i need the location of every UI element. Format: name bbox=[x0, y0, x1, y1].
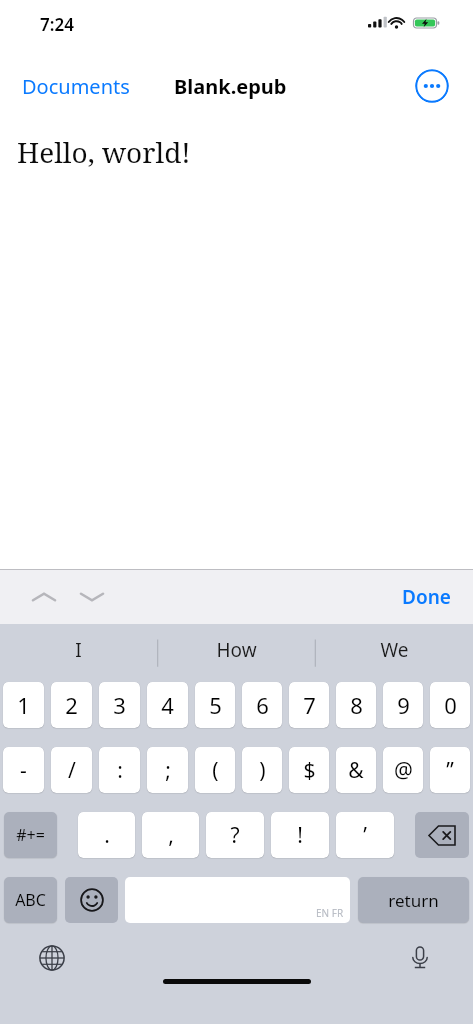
button[interactable]: @ bbox=[383, 747, 423, 793]
button[interactable]: ” bbox=[430, 747, 470, 793]
staticText: 2 bbox=[65, 690, 78, 720]
button[interactable]: How bbox=[157, 624, 315, 676]
button[interactable]: We bbox=[315, 624, 473, 676]
staticText: ” bbox=[446, 756, 454, 785]
button[interactable]: 7 bbox=[289, 682, 329, 728]
staticText: , bbox=[168, 821, 174, 850]
staticText: EN FR bbox=[316, 906, 344, 920]
button[interactable]: : bbox=[99, 747, 140, 793]
staticText: . bbox=[104, 821, 110, 850]
staticText: 9 bbox=[397, 690, 410, 720]
staticText: : bbox=[117, 756, 123, 785]
button[interactable]: 3 bbox=[99, 682, 140, 728]
button[interactable]: Space bbox=[125, 877, 350, 923]
button[interactable]: return bbox=[358, 877, 469, 923]
button[interactable]: Change keyboard language bbox=[33, 939, 71, 977]
button[interactable]: 1 bbox=[3, 682, 44, 728]
staticText: ( bbox=[212, 756, 219, 785]
button[interactable]: / bbox=[51, 747, 92, 793]
staticText: 5 bbox=[209, 690, 222, 720]
staticText: 6 bbox=[256, 690, 269, 720]
button[interactable]: - bbox=[3, 747, 44, 793]
button[interactable]: Backspace bbox=[415, 812, 469, 858]
staticText: 0 bbox=[444, 690, 457, 720]
staticText: Documents bbox=[22, 73, 130, 100]
button[interactable]: I bbox=[0, 624, 157, 676]
staticText: How bbox=[216, 637, 257, 663]
staticText: ; bbox=[165, 756, 171, 785]
button[interactable]: & bbox=[336, 747, 376, 793]
staticText: return bbox=[388, 889, 439, 912]
staticText: I bbox=[75, 637, 82, 663]
staticText: / bbox=[68, 756, 76, 785]
button[interactable]: ? bbox=[206, 812, 264, 858]
staticText: ) bbox=[259, 756, 266, 785]
staticText: ! bbox=[297, 821, 303, 850]
staticText: & bbox=[348, 756, 364, 785]
staticText: We bbox=[380, 637, 409, 663]
button[interactable]: Emoji bbox=[65, 877, 118, 923]
button[interactable]: Documents bbox=[12, 67, 140, 106]
staticText: #+= bbox=[16, 824, 45, 846]
staticText: Blank.epub bbox=[174, 73, 287, 100]
button[interactable]: 5 bbox=[195, 682, 235, 728]
staticText: @ bbox=[394, 756, 413, 785]
staticText: $ bbox=[303, 756, 316, 785]
staticText: 4 bbox=[161, 690, 174, 720]
staticText: ABC bbox=[15, 889, 46, 911]
staticText: ? bbox=[230, 821, 240, 850]
button[interactable]: ) bbox=[242, 747, 282, 793]
button[interactable]: 4 bbox=[147, 682, 188, 728]
button[interactable]: , bbox=[142, 812, 199, 858]
button[interactable]: $ bbox=[289, 747, 329, 793]
button[interactable]: #+= bbox=[4, 812, 57, 858]
staticText: 8 bbox=[350, 690, 363, 720]
button[interactable]: Next field bbox=[72, 577, 112, 617]
button[interactable]: More options bbox=[415, 69, 449, 103]
staticText: 7 bbox=[303, 690, 316, 720]
button[interactable]: ( bbox=[195, 747, 235, 793]
button[interactable]: ’ bbox=[336, 812, 394, 858]
staticText: - bbox=[20, 756, 27, 785]
button[interactable]: Previous field bbox=[24, 577, 64, 617]
button[interactable]: 9 bbox=[383, 682, 423, 728]
staticText: Hello, world! bbox=[17, 133, 191, 171]
button[interactable]: 0 bbox=[430, 682, 470, 728]
staticText: ’ bbox=[363, 821, 367, 850]
staticText: 3 bbox=[113, 690, 126, 720]
button[interactable]: 2 bbox=[51, 682, 92, 728]
button[interactable]: Done bbox=[394, 578, 459, 616]
button[interactable]: . bbox=[78, 812, 135, 858]
button[interactable]: Dictate bbox=[401, 939, 439, 977]
button[interactable]: 8 bbox=[336, 682, 376, 728]
staticText: Done bbox=[402, 584, 451, 610]
staticText: 1 bbox=[17, 690, 30, 720]
button[interactable]: ; bbox=[147, 747, 188, 793]
button[interactable]: 6 bbox=[242, 682, 282, 728]
button[interactable]: ABC bbox=[4, 877, 57, 923]
button[interactable]: ! bbox=[271, 812, 329, 858]
staticText: 7:24 bbox=[40, 13, 74, 36]
